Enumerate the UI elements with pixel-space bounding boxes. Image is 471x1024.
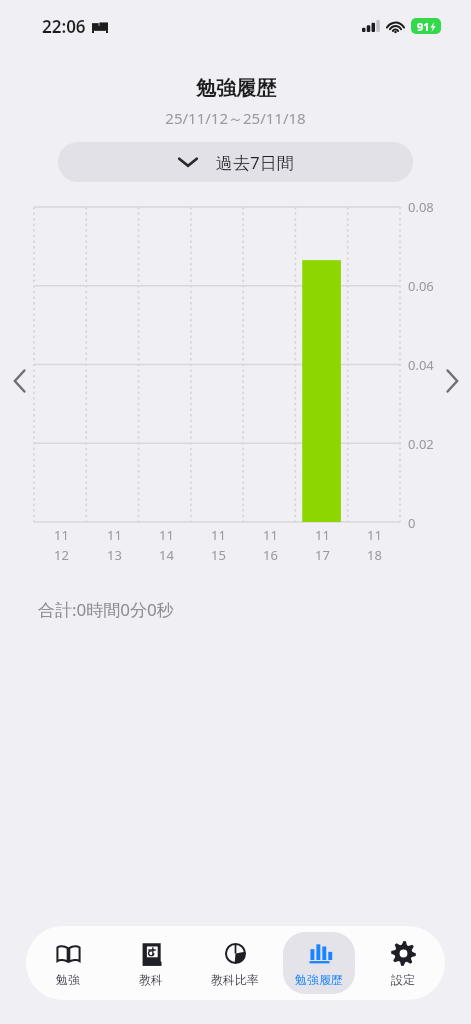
staticText: 13	[107, 546, 122, 564]
staticText: 11	[159, 526, 174, 544]
staticText: 11	[211, 526, 226, 544]
staticText: 14	[159, 546, 174, 564]
staticText: 0.04	[408, 356, 434, 374]
staticText: 0.06	[408, 277, 434, 295]
button[interactable]: 勉強履歴	[283, 932, 355, 994]
staticText: 91	[417, 19, 430, 34]
staticText: 設定	[391, 972, 415, 987]
staticText: 11	[367, 526, 382, 544]
staticText: 11	[263, 526, 278, 544]
staticText: 合計:0時間0分0秒	[38, 598, 174, 621]
button[interactable]: 設定	[367, 932, 439, 994]
button[interactable]: 勉強	[32, 932, 104, 994]
button[interactable]: 教科比率	[199, 932, 271, 994]
staticText: 過去7日間	[216, 151, 294, 174]
staticText: 25/11/12～25/11/18	[165, 108, 306, 128]
staticText: 勉強	[56, 972, 80, 987]
staticText: 17	[315, 546, 330, 564]
staticText: 16	[263, 546, 278, 564]
staticText: 15	[211, 546, 226, 564]
button[interactable]: 過去7日間	[58, 142, 413, 182]
button[interactable]: 教科	[115, 932, 187, 994]
staticText: 勉強履歴	[196, 76, 276, 101]
staticText: 0.08	[408, 198, 434, 216]
staticText: 11	[54, 526, 69, 544]
staticText: 教科比率	[211, 972, 259, 987]
staticText: 22:06	[42, 15, 86, 38]
staticText: 0.02	[408, 435, 434, 453]
button[interactable]: 次の期間	[437, 366, 467, 396]
staticText: 11	[315, 526, 330, 544]
staticText: 勉強履歴	[295, 972, 343, 987]
staticText: 教科	[139, 972, 163, 987]
staticText: 18	[367, 546, 382, 564]
button[interactable]: 前の期間	[4, 366, 34, 396]
staticText: 0	[408, 514, 416, 532]
staticText: 12	[54, 546, 69, 564]
staticText: 11	[107, 526, 122, 544]
